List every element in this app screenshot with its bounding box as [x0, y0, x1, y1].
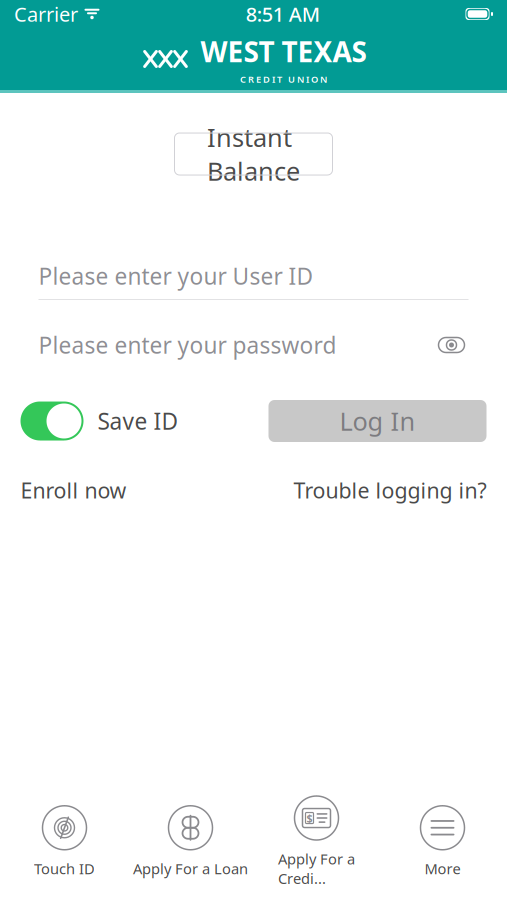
staticText: Apply For a Loan [133, 859, 248, 878]
staticText: Instant Balance [207, 120, 300, 188]
staticText: Log In [339, 404, 415, 438]
button[interactable]: $ [253, 799, 379, 885]
staticText: Enroll now [20, 476, 126, 504]
staticText: Touch ID [34, 859, 95, 878]
staticText: More [424, 859, 460, 878]
staticText: Save ID [97, 406, 178, 436]
staticText: WEST TEXAS [200, 33, 366, 70]
staticText: Carrier [14, 1, 78, 27]
button[interactable]: Log In [268, 400, 486, 442]
button[interactable]: Save ID [20, 401, 178, 440]
staticText: 8:51 AM [246, 1, 320, 27]
button[interactable]: More [379, 799, 505, 885]
staticText: Trouble logging in? [293, 476, 486, 504]
staticText: Please enter your User ID [38, 261, 313, 291]
button[interactable]: Enroll now [20, 476, 126, 504]
button[interactable]: Trouble logging in? [293, 476, 486, 504]
button[interactable]: Show password [434, 328, 468, 362]
staticText: Please enter your password [38, 330, 336, 360]
staticText: $ [306, 811, 312, 825]
button[interactable]: Instant Balance [174, 133, 332, 175]
staticText: C R E D I T U N I O N [240, 73, 327, 85]
staticText: Apply For a Credi... [278, 849, 355, 888]
button[interactable]: Apply For a Loan [127, 799, 253, 885]
button[interactable]: Touch ID [1, 799, 127, 885]
